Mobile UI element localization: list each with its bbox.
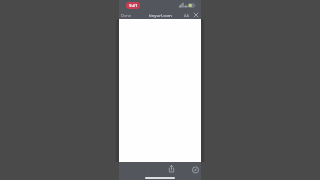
button[interactable]: Open in Safari [191, 165, 200, 174]
staticText: 9:41 [129, 3, 138, 9]
staticText: tinyurl.com [149, 12, 172, 18]
button[interactable]: Text size [184, 13, 189, 18]
button[interactable]: Close [193, 12, 199, 18]
staticText: Done [121, 13, 132, 18]
staticText: AA [184, 13, 189, 18]
button[interactable]: Share [167, 164, 176, 173]
button[interactable]: Done [120, 12, 133, 19]
